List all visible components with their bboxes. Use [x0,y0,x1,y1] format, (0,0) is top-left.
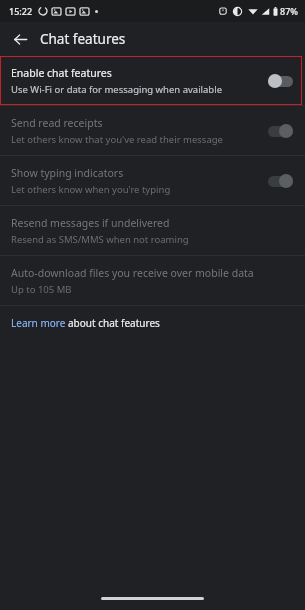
button[interactable]: Auto-download files you receive over mob… [0,256,305,305]
staticText: 87% [280,5,298,17]
staticText: Chat features [40,30,126,48]
staticText: Use Wi-Fi or data for messaging when ava… [11,83,223,96]
staticText: 15:22 [9,5,33,17]
staticText: Up to 105 MB [11,283,72,296]
staticText: Let others know when you're typing [11,183,171,196]
staticText: Send read receipts [11,116,103,130]
button[interactable]: Learn more about chat features [0,306,305,340]
staticText: Resend messages if undelivered [11,216,170,230]
staticText: Auto-download files you receive over mob… [11,266,254,280]
staticText: Resend as SMS/MMS when not roaming [11,233,189,246]
button[interactable]: Show typing indicators [0,156,305,205]
staticText: Let others know that you've read their m… [11,133,223,146]
staticText: Enable chat features [11,66,112,80]
button[interactable]: Enable chat features [0,56,302,105]
button[interactable]: Back [5,24,35,54]
staticText: Show typing indicators [11,166,124,180]
button[interactable]: Resend messages if undelivered [0,206,305,255]
button[interactable]: Send read receipts [0,106,305,155]
staticText: Learn more about chat features [11,316,160,330]
